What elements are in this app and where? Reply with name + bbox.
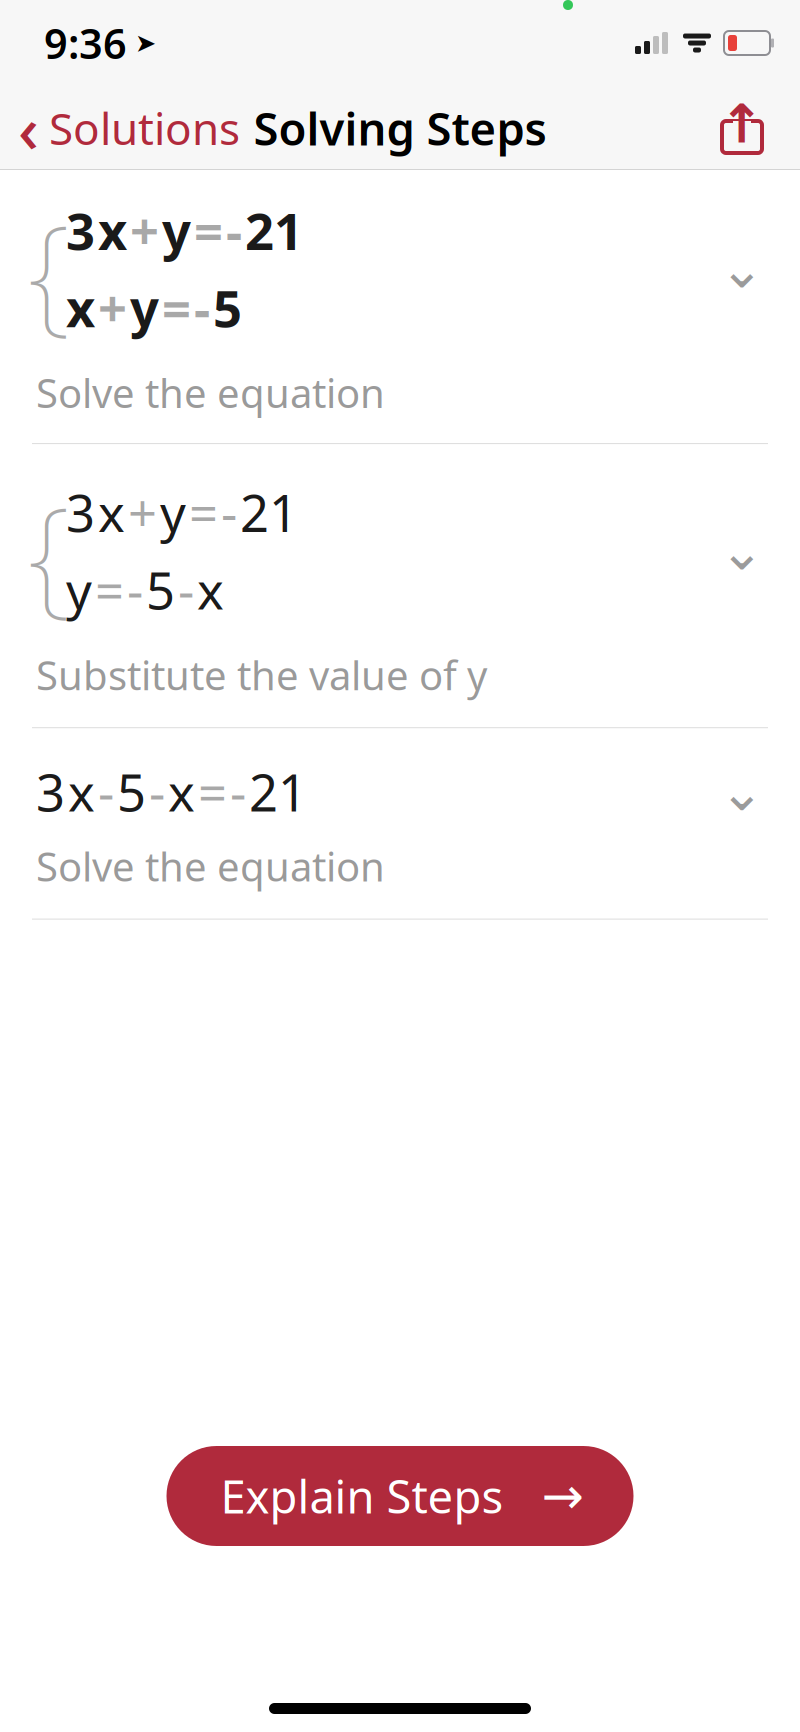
staticText: 21: [245, 197, 303, 264]
staticText: 3: [36, 758, 65, 825]
button[interactable]: {: [0, 170, 800, 443]
staticText: y: [160, 479, 186, 546]
button[interactable]: 3: [0, 728, 800, 919]
staticText: -: [230, 758, 246, 825]
staticText: y: [66, 556, 92, 623]
staticText: {: [27, 184, 70, 354]
staticText: y: [130, 274, 159, 341]
staticText: Solve the equation: [36, 839, 385, 893]
staticText: y: [162, 197, 191, 264]
staticText: Solutions: [49, 99, 240, 157]
staticText: -: [149, 758, 165, 825]
staticText: Solving Steps: [253, 98, 546, 158]
staticText: -: [221, 479, 237, 546]
staticText: -: [194, 274, 210, 341]
staticText: +: [130, 197, 159, 264]
button[interactable]: Explain Steps: [166, 1446, 633, 1546]
staticText: ↑: [719, 94, 764, 154]
staticText: Explain Steps: [220, 1466, 503, 1526]
staticText: ): [298, 1524, 313, 1591]
staticText: 3: [66, 479, 95, 546]
staticText: -: [98, 758, 114, 825]
staticText: x: [66, 274, 95, 341]
staticText: 3: [66, 197, 95, 264]
staticText: →: [541, 1467, 583, 1525]
button[interactable]: ‹: [0, 88, 258, 168]
staticText: x: [68, 758, 95, 825]
staticText: ⌄: [719, 239, 764, 299]
staticText: x: [98, 197, 127, 264]
staticText: =: [198, 758, 227, 825]
staticText: =: [148, 1524, 177, 1591]
staticText: 5: [117, 758, 146, 825]
staticText: =: [162, 274, 191, 341]
staticText: -: [226, 197, 242, 264]
staticText: A possible solution is: [36, 1414, 427, 1467]
staticText: ,: [249, 1524, 263, 1591]
staticText: ‹: [18, 85, 39, 170]
staticText: -: [198, 1524, 214, 1591]
staticText: +: [128, 479, 157, 546]
button[interactable]: {: [0, 1685, 800, 1732]
staticText: =: [95, 556, 124, 623]
staticText: x: [197, 556, 224, 623]
staticText: 3: [266, 1524, 295, 1591]
staticText: x: [168, 758, 195, 825]
staticText: 5: [213, 274, 242, 341]
staticText: -: [178, 556, 194, 623]
staticText: Substitute the value of y: [36, 648, 487, 701]
button[interactable]: Share: [704, 88, 780, 168]
staticText: =: [189, 479, 218, 546]
button[interactable]: y: [0, 1302, 800, 1493]
staticText: 9:36: [44, 16, 127, 70]
staticText: Solve the equation: [36, 366, 385, 419]
staticText: 5: [146, 556, 175, 623]
button[interactable]: {: [0, 444, 800, 727]
staticText: x: [98, 479, 125, 546]
staticText: 21: [249, 758, 307, 825]
staticText: ➤: [135, 29, 156, 57]
button[interactable]: (: [0, 1494, 800, 1684]
staticText: 8: [217, 1524, 246, 1591]
staticText: -: [127, 556, 143, 623]
staticText: ⌄: [719, 521, 764, 581]
staticText: ⌄: [719, 762, 764, 822]
